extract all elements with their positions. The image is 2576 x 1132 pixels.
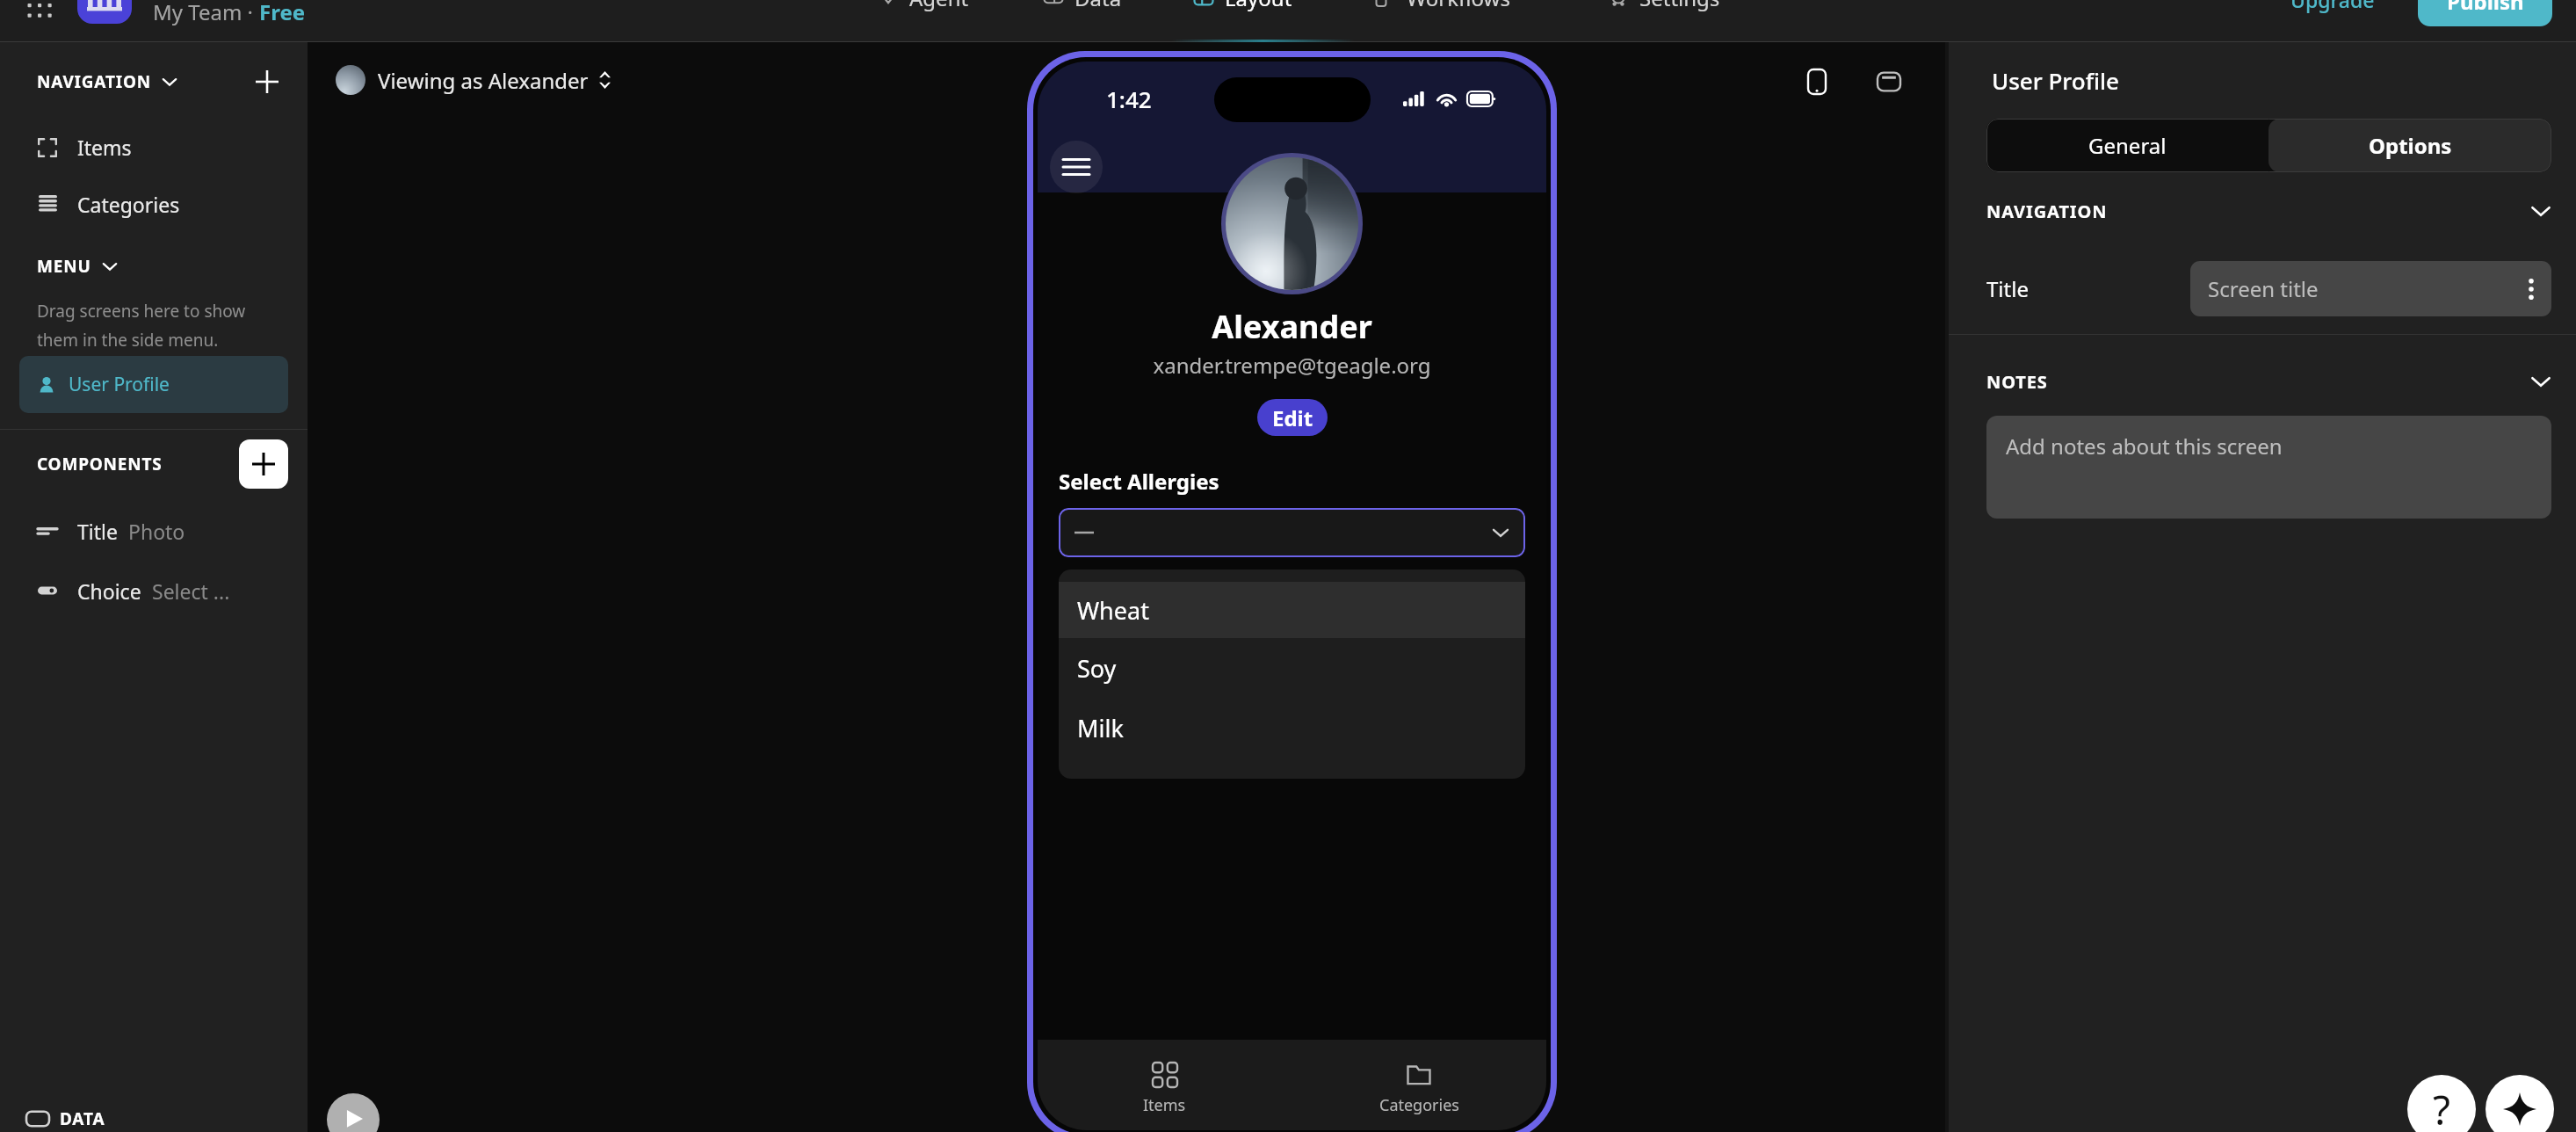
button[interactable]: Title <box>0 501 308 561</box>
staticText: Layout <box>1225 0 1292 12</box>
staticText: Workflows <box>1407 0 1510 12</box>
staticText: Add notes about this screen <box>2006 432 2283 461</box>
staticText: Data <box>1075 0 1122 12</box>
button[interactable]: Wheat <box>1059 582 1525 638</box>
staticText: 1:42 <box>1106 83 1152 114</box>
staticText: Soy <box>1077 652 1117 685</box>
staticText: User Profile <box>69 372 170 397</box>
button[interactable]: Choice <box>0 561 308 620</box>
button[interactable]: Screen title <box>2190 261 2551 316</box>
staticText: Items <box>77 134 132 161</box>
button[interactable]: Menu <box>1050 141 1103 193</box>
staticText: Alexander <box>1038 305 1546 348</box>
button[interactable]: Data <box>1022 0 1172 18</box>
staticText: Viewing as Alexander <box>378 66 589 95</box>
staticText: COMPONENTS <box>37 453 163 475</box>
staticText: User Profile <box>1992 65 2119 96</box>
staticText: Edit <box>1272 403 1313 432</box>
staticText: Agent <box>909 0 969 12</box>
button[interactable]: Viewing as Alexander <box>332 62 614 98</box>
button[interactable]: General <box>1986 119 2268 172</box>
staticText: xander.trempe@tgeagle.org <box>1038 351 1546 380</box>
staticText: MENU <box>37 255 91 278</box>
staticText: Title <box>77 518 118 545</box>
staticText: General <box>2088 131 2167 160</box>
button[interactable]: NAVIGATION <box>37 70 177 93</box>
staticText: Screen title <box>2208 274 2319 303</box>
button[interactable]: App icon <box>77 0 132 24</box>
staticText: Settings <box>1639 0 1720 12</box>
staticText: My Team · <box>153 0 259 26</box>
staticText: Free <box>259 0 306 26</box>
button[interactable]: Edit <box>1257 399 1328 436</box>
staticText: NAVIGATION <box>1986 200 2108 223</box>
button[interactable]: Preview <box>327 1093 380 1132</box>
button[interactable]: Add component <box>239 439 288 489</box>
staticText: Wheat <box>1077 594 1149 627</box>
staticText: Upgrade <box>2290 0 2375 13</box>
staticText: Categories <box>1379 1094 1459 1116</box>
button[interactable]: Apps <box>25 0 52 18</box>
staticText: Milk <box>1077 712 1124 744</box>
button[interactable]: Soy <box>1059 638 1525 698</box>
staticText: Options <box>2369 131 2452 160</box>
button[interactable]: Workflows <box>1354 0 1587 18</box>
button[interactable]: Agent <box>857 0 1022 18</box>
button[interactable]: Categories <box>1292 1040 1546 1130</box>
button[interactable]: Options <box>2268 119 2551 172</box>
button[interactable]: Add notes about this screen <box>1986 416 2551 519</box>
button[interactable]: Help <box>2407 1075 2476 1132</box>
staticText: Select ... <box>152 577 230 605</box>
button[interactable] <box>1059 508 1525 557</box>
button[interactable]: Categories <box>0 176 308 233</box>
staticText: Title <box>1986 274 2029 303</box>
button[interactable]: Layout <box>1172 0 1354 18</box>
button[interactable]: Upgrade <box>2285 0 2380 20</box>
staticText: DATA <box>60 1107 105 1130</box>
staticText: Categories <box>77 191 180 218</box>
staticText: ? <box>2433 1082 2450 1132</box>
button[interactable]: Items <box>1038 1040 1292 1130</box>
button[interactable]: Phone preview <box>1798 62 1836 101</box>
staticText: NAVIGATION <box>37 70 151 93</box>
staticText: Items <box>1143 1094 1186 1116</box>
button[interactable]: NOTES <box>1986 366 2551 397</box>
button[interactable]: User Profile <box>19 356 288 413</box>
button[interactable]: NAVIGATION <box>1986 195 2551 227</box>
staticText: Photo <box>128 518 185 545</box>
button[interactable]: Milk <box>1059 698 1525 758</box>
button[interactable]: Settings <box>1587 0 1776 18</box>
button[interactable]: Add screen <box>250 64 285 99</box>
staticText: Publish <box>2447 0 2524 16</box>
staticText: NOTES <box>1986 370 2048 394</box>
staticText: Select Allergies <box>1059 467 1219 496</box>
button[interactable]: Tablet preview <box>1870 62 1908 101</box>
button[interactable]: MENU <box>37 249 118 284</box>
staticText: Choice <box>77 577 141 605</box>
button[interactable]: Items <box>0 119 308 176</box>
button[interactable]: AI assistant <box>2486 1075 2554 1132</box>
staticText: Drag screens here to show them in the si… <box>37 300 246 351</box>
button[interactable]: Publish <box>2418 0 2552 26</box>
